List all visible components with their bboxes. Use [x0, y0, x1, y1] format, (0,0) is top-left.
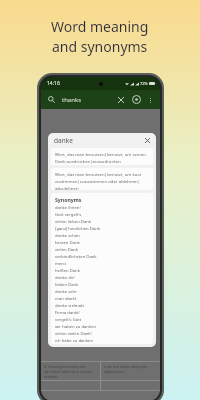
staticText: vielen lieben Dank [55, 219, 92, 225]
button[interactable]: heißen Dank [55, 268, 150, 274]
staticText: danke sehr [55, 289, 77, 295]
staticText: besten Dank [55, 240, 80, 246]
staticText: and synonyms [52, 37, 148, 56]
staticText: vielen vielen Dank! [55, 331, 92, 337]
button[interactable]: vergelt's Gott [55, 317, 150, 323]
staticText: again [iron.] [104, 369, 125, 374]
staticText: merci [55, 261, 67, 267]
staticText: heißen Dank [55, 268, 80, 274]
button[interactable]: verbindlichsten Dank [55, 254, 150, 260]
staticText: man dankt [55, 296, 77, 302]
staticText: Wort, das man benutzen|benutzt, um seine… [55, 151, 146, 157]
button[interactable]: Wort, das man benutzen|benutzt, um seine… [51, 148, 153, 165]
button[interactable]: Firma dankt! [55, 310, 150, 316]
button[interactable]: danke sehr [55, 289, 150, 295]
staticText: Word meaning [51, 17, 149, 36]
button[interactable]: man dankt [55, 296, 150, 302]
button[interactable]: danke schön [55, 233, 150, 239]
button[interactable]: Gott vergelt's [55, 212, 150, 218]
staticText: [ganz] herzlichen Dank [55, 226, 100, 232]
staticText: ich habe zu danken [55, 338, 94, 344]
button[interactable]: Wort, das man benutzen|benutzt, um kurz [51, 168, 153, 190]
staticText: 72% [140, 81, 148, 86]
staticText: zustimmen|zuzustimmen oder ablehnen| [55, 178, 141, 184]
staticText: thanks [62, 96, 82, 104]
button[interactable]: Search [46, 94, 57, 105]
staticText: is do the whole thing over [104, 364, 148, 369]
button[interactable]: More options [145, 95, 155, 105]
button[interactable]: vielen Dank [55, 247, 150, 253]
staticText: wir haben zu danken [55, 324, 97, 330]
staticText: 4. Deswegen können wir [44, 364, 86, 369]
button[interactable]: [ganz] herzlichen Dank [55, 226, 150, 232]
button[interactable]: danke dir! [55, 275, 150, 281]
button[interactable]: lieben Dank [55, 282, 150, 288]
staticText: Dank ausdrücken|auszudrücken [55, 158, 121, 164]
button[interactable]: ich habe zu danken [55, 338, 150, 344]
button[interactable]: Voice search [131, 94, 142, 105]
staticText: abzulehnen [55, 185, 79, 190]
button[interactable]: danke vielmals [55, 303, 150, 309]
staticText: lieben Dank [55, 282, 79, 288]
staticText: machen [44, 374, 58, 378]
staticText: Gott vergelt's [55, 212, 82, 218]
staticText: verbindlichsten Dank [55, 254, 97, 260]
button[interactable]: Close dialog [143, 136, 152, 145]
staticText: das Ganze jetzt noch einmal [44, 369, 92, 374]
staticText: danke schön [55, 233, 80, 239]
staticText: danke [54, 136, 73, 145]
button[interactable]: wir haben zu danken [55, 324, 150, 330]
staticText: Wort, das man benutzen|benutzt, um kurz [55, 171, 142, 177]
button[interactable]: vielen vielen Dank! [55, 331, 150, 337]
staticText: vielen Dank [55, 247, 78, 253]
button[interactable]: besten Dank [55, 240, 150, 246]
button[interactable]: Clear search [115, 94, 126, 105]
button[interactable]: vielen lieben Dank [55, 219, 150, 225]
staticText: vergelt's Gott [55, 317, 82, 323]
staticText: 14:16 [47, 80, 60, 87]
button[interactable]: danke ihnen! [55, 205, 150, 211]
button[interactable]: merci [55, 261, 150, 267]
staticText: danke vielmals [55, 303, 85, 309]
staticText: Synonyms [55, 196, 82, 203]
staticText: danke ihnen! [55, 205, 81, 211]
staticText: Firma dankt! [55, 310, 80, 316]
staticText: danke dir! [55, 275, 75, 281]
